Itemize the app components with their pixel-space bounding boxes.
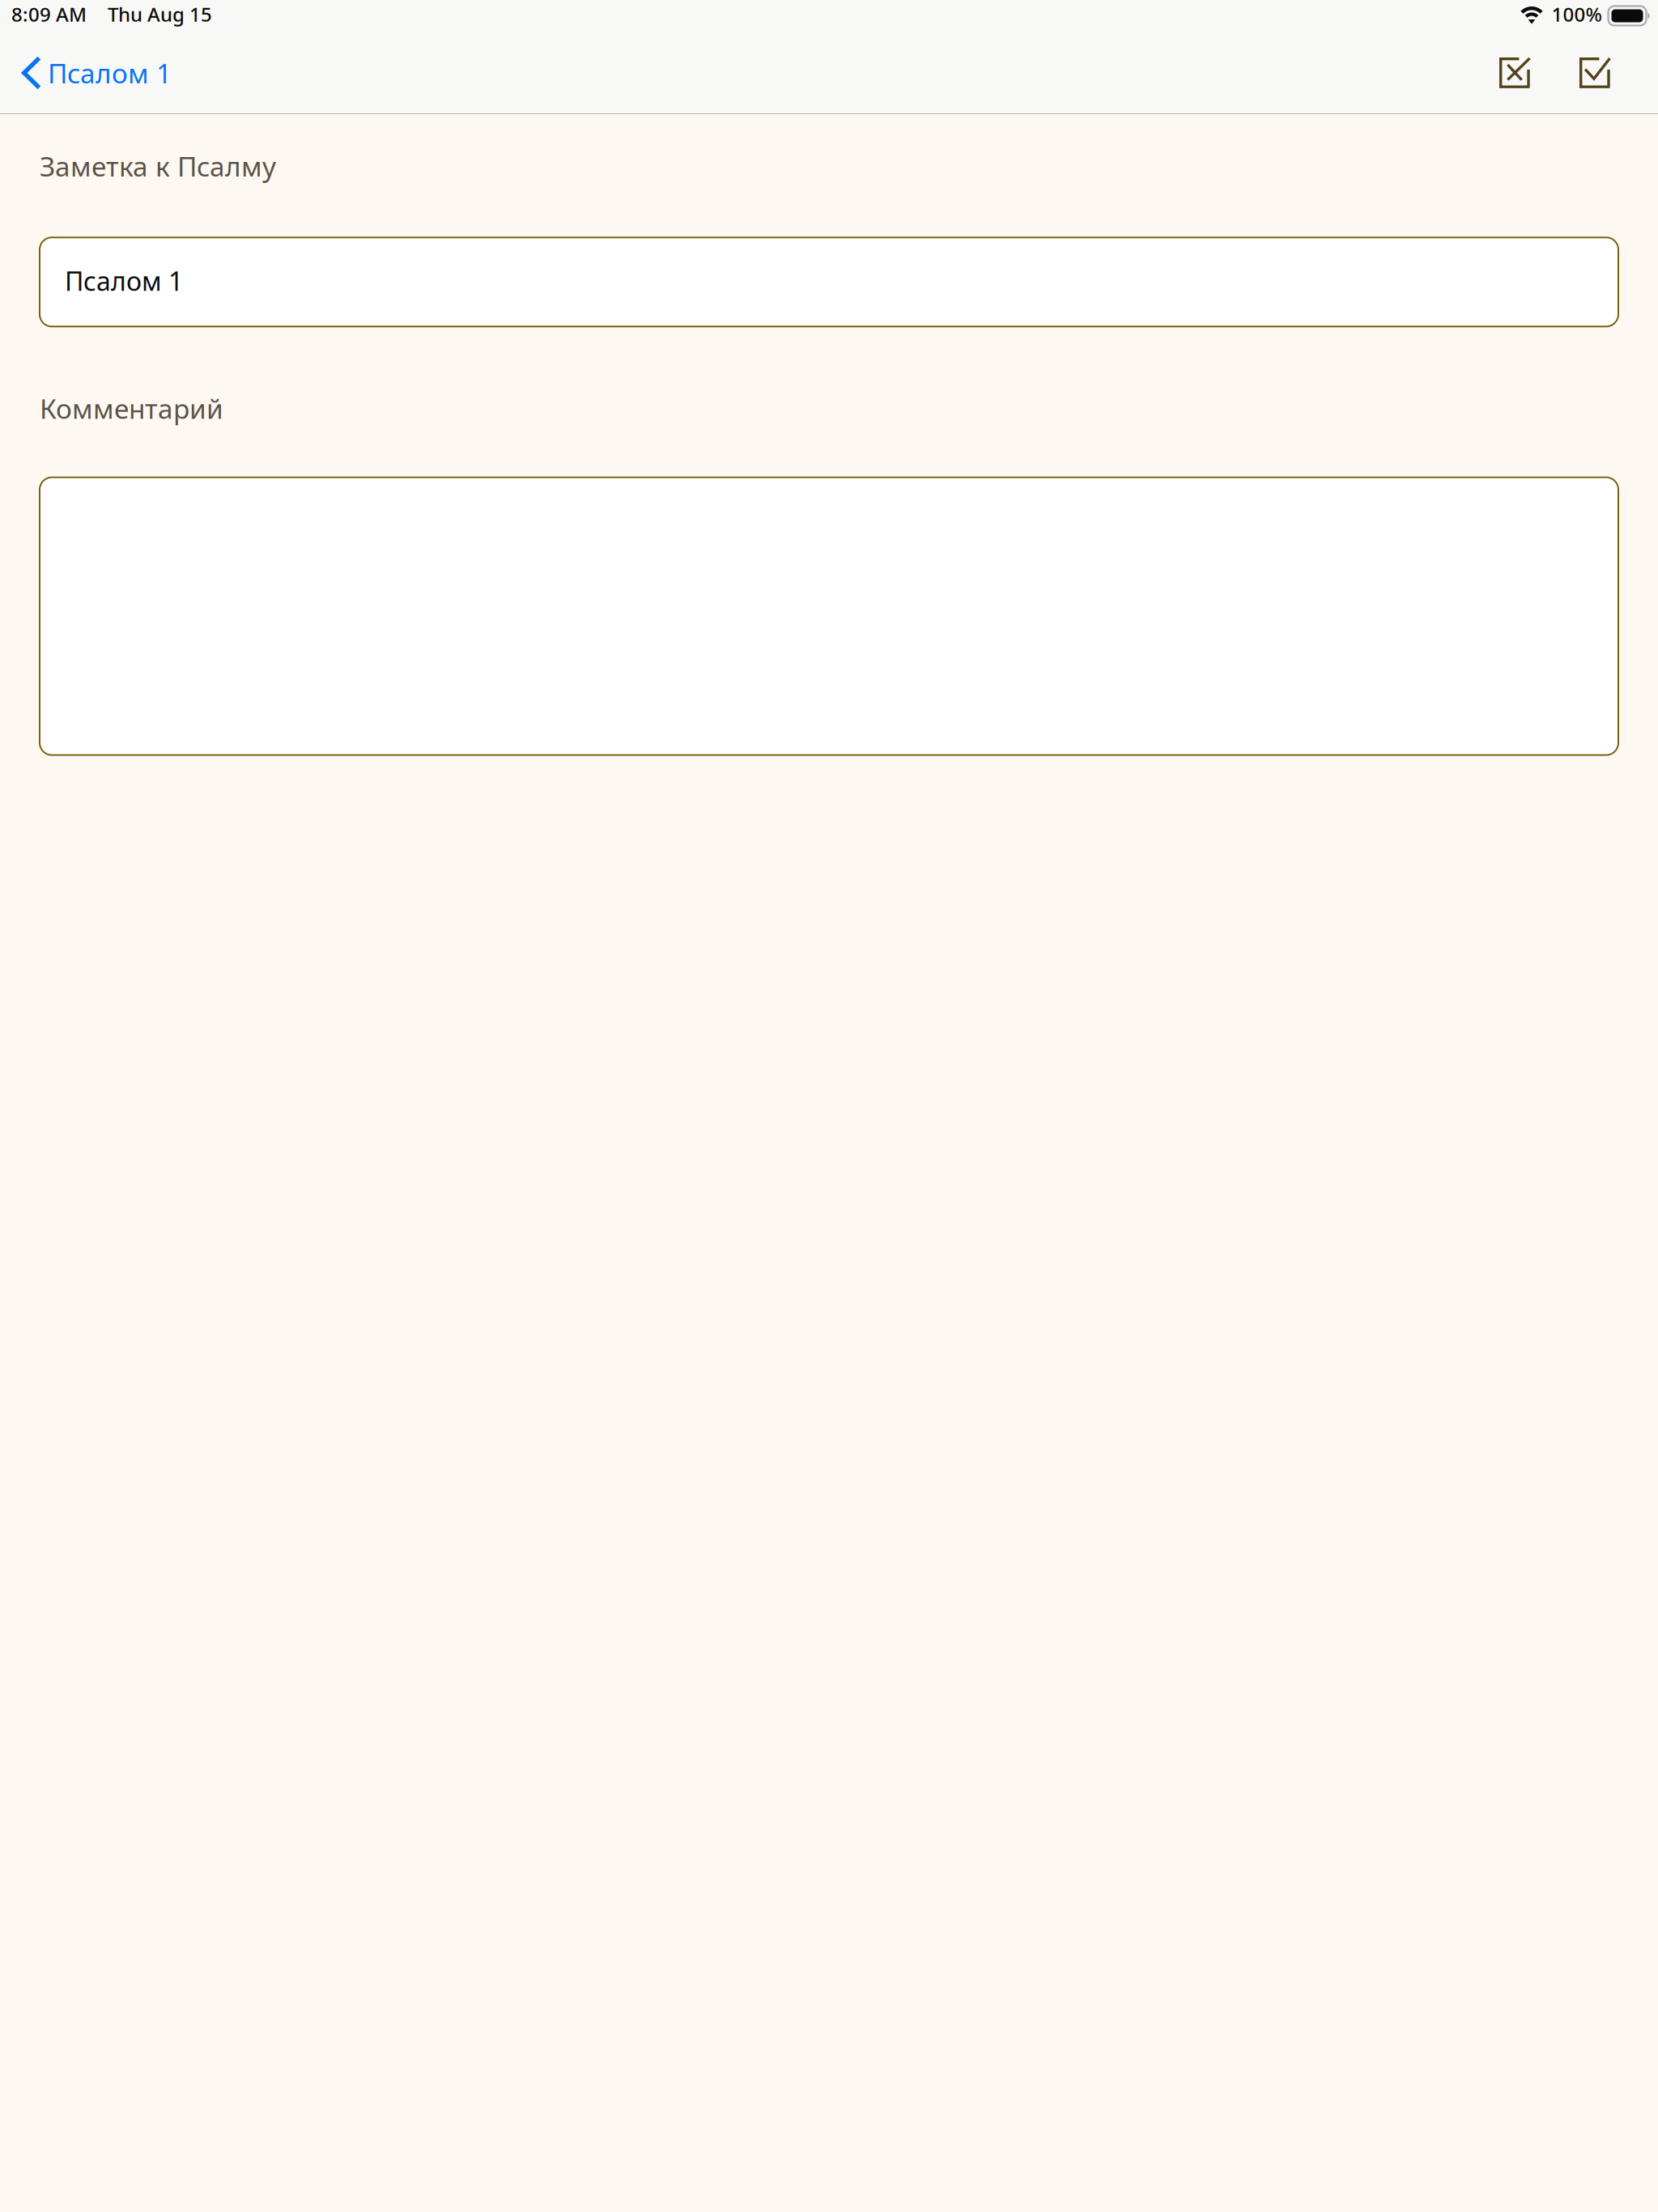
button[interactable]: Псалом 1 bbox=[0, 237, 1658, 327]
button[interactable]: Псалом 1 bbox=[0, 33, 185, 113]
staticText: Thu Aug 15 bbox=[108, 1, 212, 27]
button[interactable] bbox=[0, 476, 1658, 756]
staticText: 8:09 AM bbox=[11, 1, 87, 27]
button[interactable]: Отменить bbox=[1466, 33, 1563, 113]
staticText: Псалом 1 bbox=[65, 264, 183, 298]
staticText: Псалом 1 bbox=[48, 55, 172, 91]
button[interactable]: Сохранить bbox=[1563, 33, 1626, 113]
staticText: 100% bbox=[1552, 1, 1602, 27]
staticText: Заметка к Псалму bbox=[40, 148, 276, 184]
staticText: Комментарий bbox=[40, 391, 223, 426]
